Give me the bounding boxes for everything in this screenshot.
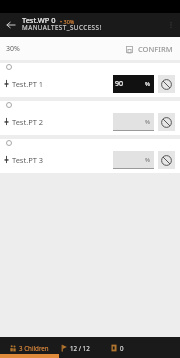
button[interactable]: % <box>113 151 154 169</box>
button[interactable]: Test.PT 3 <box>0 139 180 173</box>
staticText: • 30% <box>60 18 75 25</box>
button[interactable]: CONFIRM <box>121 40 178 58</box>
button[interactable]: % <box>113 113 154 131</box>
staticText: Test.PT 3 <box>12 155 44 165</box>
button[interactable]: 0 <box>91 337 144 358</box>
staticText: % <box>145 118 150 126</box>
staticText: % <box>145 156 150 164</box>
staticText: Test.WP 0 <box>22 15 56 25</box>
button[interactable]: Test.PT 2 <box>0 101 180 135</box>
button[interactable]: 12 / 12 <box>59 337 91 358</box>
staticText: Test.PT 1 <box>12 79 44 89</box>
staticText: 3 Children <box>19 344 49 352</box>
staticText: CONFIRM <box>138 44 173 54</box>
button[interactable]: Test.PT 1 <box>0 63 180 97</box>
button[interactable]: Not applicable <box>158 151 175 169</box>
staticText: 0 <box>120 344 124 352</box>
staticText: 12 / 12 <box>70 344 90 352</box>
staticText: % <box>145 80 150 88</box>
button[interactable]: 3 Children <box>0 337 59 358</box>
staticText: 90 <box>115 79 124 89</box>
button[interactable]: Not applicable <box>158 75 175 93</box>
staticText: Test.PT 2 <box>12 117 44 127</box>
button[interactable]: 90 <box>113 75 154 93</box>
staticText: 30% <box>6 44 20 54</box>
staticText: MANUALTEST_SUCCESS! <box>22 23 102 32</box>
button[interactable]: Back <box>0 13 22 37</box>
button[interactable]: Not applicable <box>158 113 175 131</box>
